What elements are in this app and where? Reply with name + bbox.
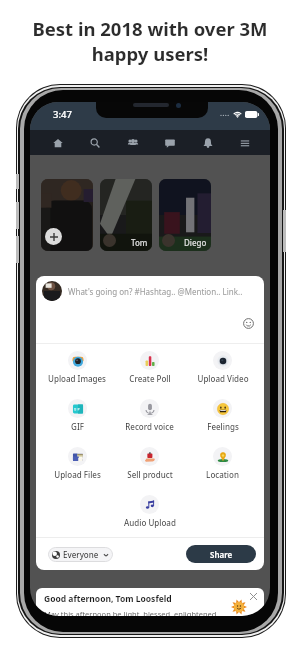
button[interactable]: Friends: [120, 130, 145, 155]
button[interactable]: Home: [45, 130, 70, 155]
staticText: Share: [210, 549, 233, 560]
button[interactable]: Everyone: [48, 547, 113, 562]
staticText: Best in 2018 with over 3M happy users!: [32, 16, 268, 67]
staticText: Good afternoon, Tom Loosfeld: [44, 593, 172, 605]
button[interactable]: Notifications: [195, 130, 220, 155]
staticText: Diego: [184, 237, 207, 248]
button[interactable]: Location: [186, 440, 259, 488]
staticText: Location: [206, 469, 239, 480]
staticText: May this afternoon be light, blessed, en…: [44, 609, 219, 616]
button[interactable]: GIF: [41, 392, 113, 440]
button[interactable]: Close: [248, 591, 259, 602]
button[interactable]: Audio Upload: [113, 488, 186, 536]
staticText: Upload Images: [48, 373, 106, 384]
button[interactable]: Upload Images: [41, 344, 113, 392]
staticText: Upload Files: [54, 469, 101, 480]
button[interactable]: Upload Video: [186, 344, 259, 392]
button[interactable]: Feelings: [186, 392, 259, 440]
staticText: Record voice: [125, 421, 174, 432]
staticText: Feelings: [207, 421, 239, 432]
staticText: Sell product: [127, 469, 173, 480]
staticText: GIF: [71, 421, 84, 432]
staticText: Tom: [131, 237, 148, 248]
button[interactable]: Tom: [100, 179, 152, 251]
staticText: What's going on? #Hashtag.. @Mention.. L…: [68, 286, 243, 297]
button[interactable]: Search: [82, 130, 107, 155]
staticText: 3:47: [53, 108, 72, 121]
staticText: Audio Upload: [124, 517, 176, 528]
button[interactable]: Share: [186, 545, 256, 563]
button[interactable]: Add story: [41, 179, 93, 251]
button[interactable]: Messages: [157, 130, 182, 155]
button[interactable]: Record voice: [113, 392, 186, 440]
button[interactable]: Emoji: [242, 317, 255, 330]
staticText: Upload Video: [197, 373, 249, 384]
button[interactable]: Sell product: [113, 440, 186, 488]
staticText: Everyone: [63, 549, 99, 560]
button[interactable]: Add story: [45, 228, 62, 245]
button[interactable]: Create Poll: [113, 344, 186, 392]
button[interactable]: Upload Files: [41, 440, 113, 488]
button[interactable]: Diego: [159, 179, 211, 251]
button[interactable]: Menu: [232, 130, 257, 155]
staticText: Create Poll: [129, 373, 171, 384]
